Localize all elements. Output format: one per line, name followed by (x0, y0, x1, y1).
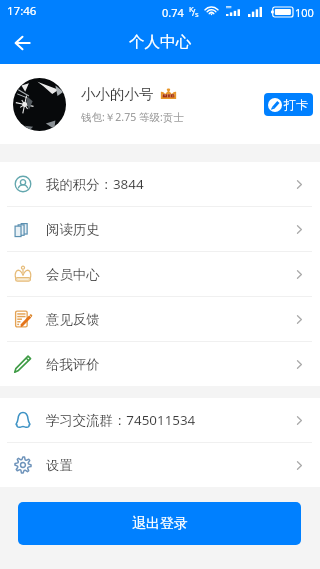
staticText: 小小的小号 (81, 85, 154, 103)
staticText: 阅读历史 (46, 221, 100, 238)
staticText: 打卡 (284, 97, 308, 112)
button[interactable]: 意见反馈 (0, 297, 320, 341)
staticText: 会员中心 (46, 266, 100, 283)
staticText: 给我评价 (46, 356, 100, 373)
button[interactable]: 阅读历史 (0, 207, 320, 251)
staticText: 100 (295, 5, 314, 20)
staticText: 钱包:￥2.75 等级:贡士 (81, 110, 184, 124)
staticText: 学习交流群：745011534 (46, 411, 196, 429)
staticText: 退出登录 (132, 515, 188, 533)
staticText: 个人中心 (129, 32, 191, 52)
button[interactable]: 我的积分：3844 (0, 162, 320, 206)
staticText: 0.74 (162, 5, 184, 20)
staticText: 设置 (46, 457, 73, 474)
button[interactable]: 小小的小号 (0, 64, 320, 144)
staticText: 我的积分：3844 (46, 175, 144, 193)
button[interactable]: Back (0, 22, 44, 64)
button[interactable]: 学习交流群：745011534 (0, 398, 320, 442)
staticText: s (195, 9, 199, 19)
staticText: 意见反馈 (46, 311, 100, 328)
staticText: 17:46 (7, 3, 37, 19)
button[interactable]: 给我评价 (0, 342, 320, 386)
button[interactable]: 打卡 (264, 93, 313, 116)
button[interactable]: 设置 (0, 443, 320, 487)
button[interactable]: 退出登录 (18, 502, 301, 545)
button[interactable]: 会员中心 (0, 252, 320, 296)
staticText: K (189, 4, 194, 14)
staticText: / (192, 6, 196, 18)
